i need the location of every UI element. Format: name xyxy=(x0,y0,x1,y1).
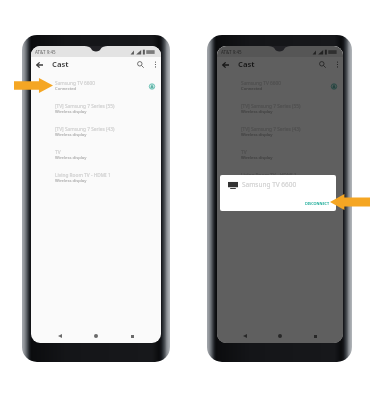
button[interactable]: DISCONNECT xyxy=(302,199,333,208)
staticText: DISCONNECT xyxy=(305,201,330,206)
staticText: Wireless display xyxy=(55,132,87,138)
button[interactable]: More options xyxy=(148,57,161,71)
button[interactable]: [TV] Samsung 7 Series (43) xyxy=(31,121,161,144)
staticText: [TV] Samsung 7 Series (43) xyxy=(55,126,115,133)
button[interactable]: [TV] Samsung 7 Series (43) xyxy=(217,121,343,144)
staticText: Samsung TV 6600 xyxy=(55,80,96,87)
staticText: TV xyxy=(241,149,247,156)
staticText: Living Room TV - HDMI 1 xyxy=(241,172,297,179)
staticText: Wireless display xyxy=(241,155,273,161)
button[interactable]: Back xyxy=(217,56,234,73)
staticText: [TV] Samsung 7 Series (43) xyxy=(241,126,301,133)
staticText: Cast xyxy=(238,59,255,69)
staticText: [TV] Samsung 7 Series (55) xyxy=(241,103,301,110)
staticText: Cast xyxy=(52,59,69,69)
button[interactable]: More options xyxy=(330,57,343,71)
staticText: AT&T 9:45 xyxy=(221,49,242,55)
staticText: [TV] Samsung 7 Series (55) xyxy=(55,103,115,110)
button[interactable]: Back xyxy=(53,329,67,343)
staticText: Living Room TV - HDMI 1 xyxy=(55,172,111,179)
button[interactable]: Recents xyxy=(308,329,322,343)
button[interactable]: TV xyxy=(31,144,161,167)
staticText: Connected xyxy=(55,86,77,92)
button[interactable]: [TV] Samsung 7 Series (55) xyxy=(217,98,343,121)
button[interactable]: [TV] Samsung 7 Series (55) xyxy=(31,98,161,121)
button[interactable]: Back xyxy=(238,329,252,343)
button[interactable]: Search xyxy=(132,56,148,72)
button[interactable]: Home xyxy=(273,329,287,343)
button[interactable]: Samsung TV 6600 xyxy=(31,75,161,98)
staticText: Wireless display xyxy=(55,109,87,115)
button[interactable]: Recents xyxy=(125,329,139,343)
staticText: Wireless display xyxy=(241,132,273,138)
button[interactable]: Search xyxy=(314,56,330,72)
staticText: Samsung TV 6600 xyxy=(242,180,297,189)
staticText: Wireless display xyxy=(55,155,87,161)
staticText: Wireless display xyxy=(241,178,273,184)
button[interactable]: Home xyxy=(89,329,103,343)
staticText: Wireless display xyxy=(241,109,273,115)
staticText: Samsung TV 6600 xyxy=(241,80,282,87)
button[interactable]: Living Room TV - HDMI 1 xyxy=(31,167,161,190)
staticText: AT&T 9:45 xyxy=(35,49,56,55)
button[interactable]: Living Room TV - HDMI 1 xyxy=(217,167,343,190)
button[interactable]: Back xyxy=(31,56,48,73)
button[interactable]: Samsung TV 6600 xyxy=(217,75,343,98)
staticText: Wireless display xyxy=(55,178,87,184)
staticText: TV xyxy=(55,149,61,156)
staticText: Connected xyxy=(241,86,263,92)
